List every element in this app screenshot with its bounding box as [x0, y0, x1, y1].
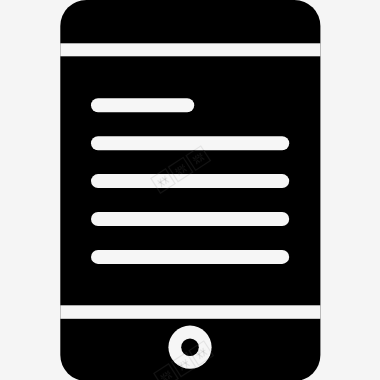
button[interactable]: Home [168, 325, 212, 369]
button[interactable]: Tablet device showing lines of text [0, 0, 380, 380]
